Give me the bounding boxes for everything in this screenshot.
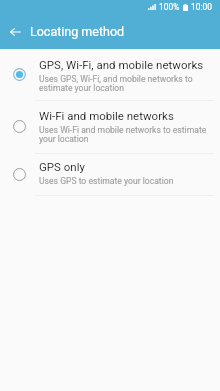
staticText: Uses GPS to estimate your location — [39, 176, 174, 186]
staticText: Uses GPS, Wi-Fi, and mobile networks to … — [39, 74, 215, 93]
button[interactable]: Wi-Fi and mobile networks — [0, 101, 220, 153]
staticText: Uses Wi-Fi and mobile networks to estima… — [39, 125, 215, 144]
staticText: 10:00 — [191, 2, 212, 12]
button[interactable]: GPS only — [0, 154, 220, 195]
staticText: Locating method — [30, 24, 125, 39]
button[interactable]: GPS, Wi-Fi, and mobile networks — [0, 51, 220, 100]
staticText: 100% — [159, 2, 180, 12]
staticText: Wi-Fi and mobile networks — [39, 109, 174, 122]
staticText: GPS, Wi-Fi, and mobile networks — [39, 58, 204, 71]
button[interactable]: Navigate up — [0, 15, 30, 49]
staticText: GPS only — [39, 160, 85, 173]
